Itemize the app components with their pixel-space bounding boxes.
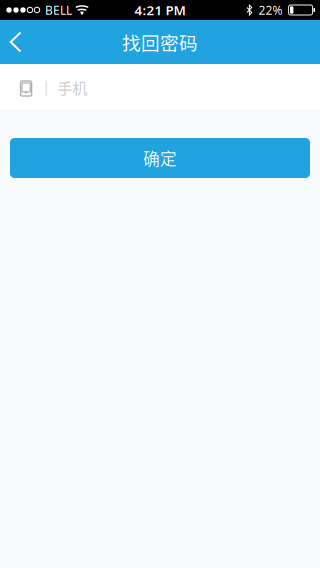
staticText: 找回密码 [122,28,198,55]
button[interactable]: 手机 [0,64,320,109]
button[interactable]: 确定 [10,138,310,178]
button[interactable]: Back [0,20,36,64]
staticText: BELL [45,2,72,18]
staticText: 手机 [57,76,87,98]
staticText: 22% [259,2,283,18]
staticText: 4:21 PM [134,1,185,19]
staticText: 确定 [143,146,177,170]
